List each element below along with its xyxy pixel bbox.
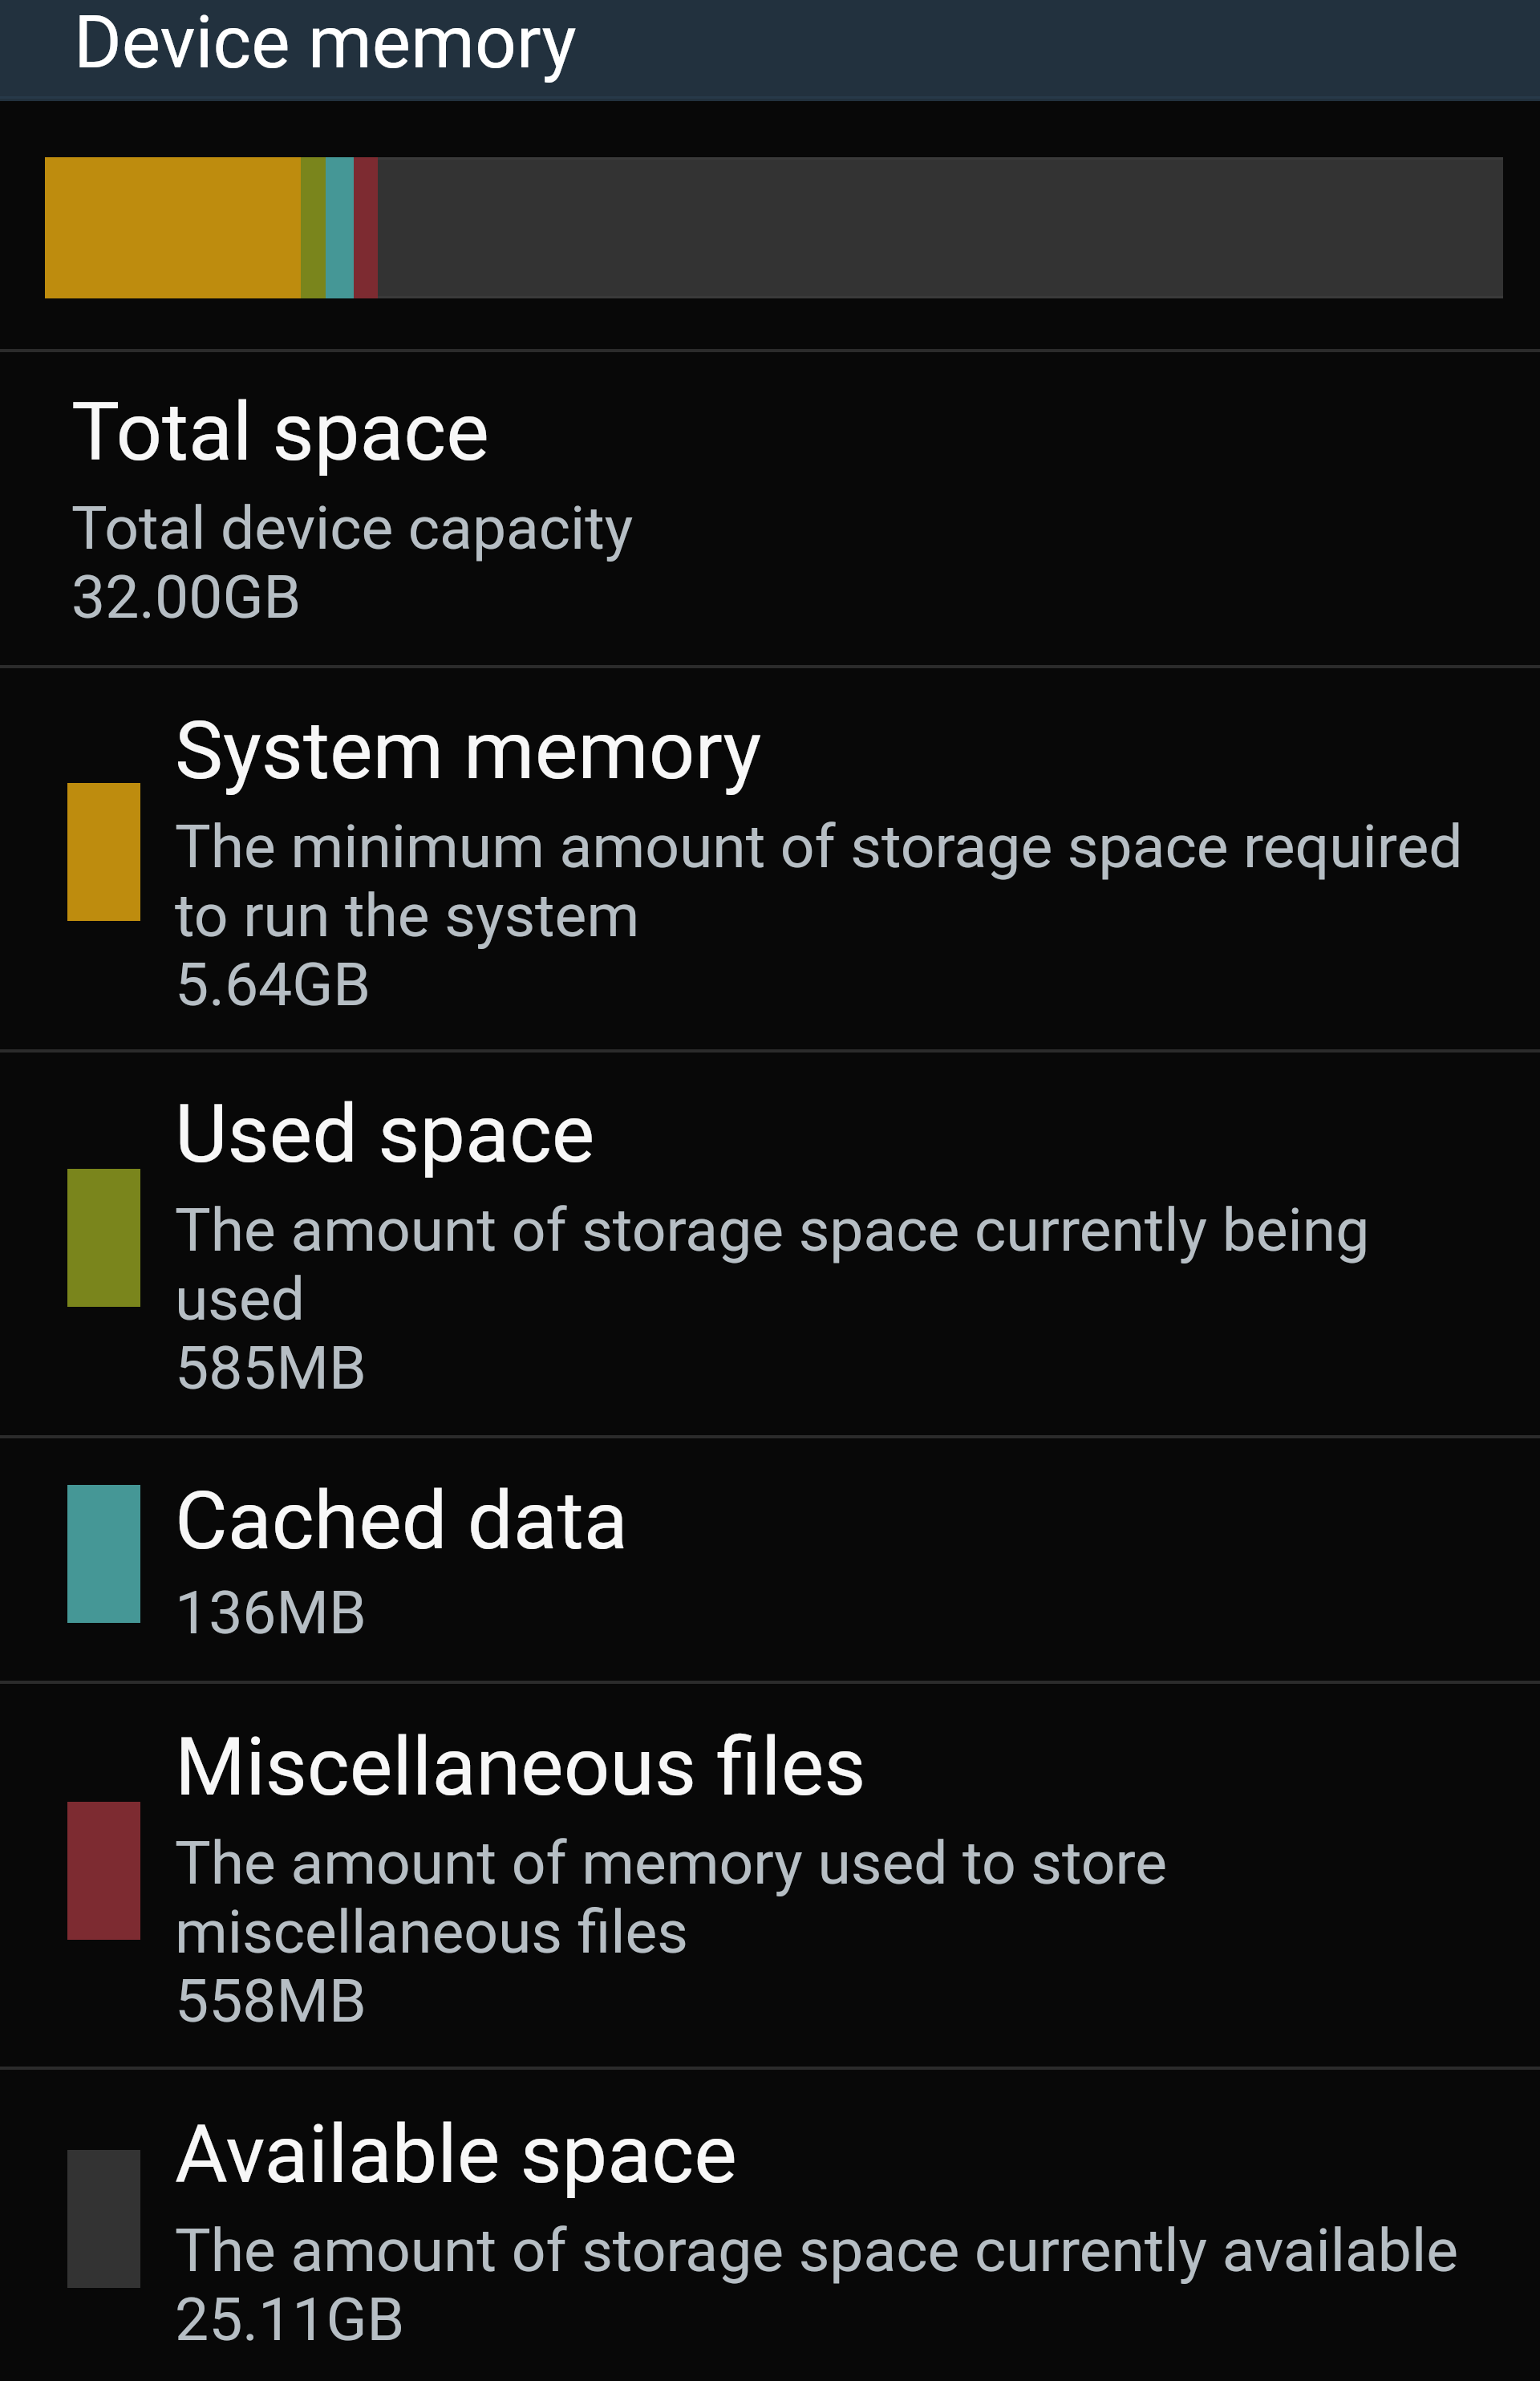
button[interactable]: System memory — [0, 668, 1540, 1049]
staticText: System memory — [175, 703, 762, 797]
staticText: 585MB — [175, 1332, 367, 1403]
staticText: Available space — [175, 2107, 737, 2201]
staticText: miscellaneous files — [175, 1896, 688, 1967]
staticText: Miscellaneous files — [175, 1719, 866, 1814]
button[interactable]: Total space — [0, 352, 1540, 665]
staticText: 558MB — [175, 1965, 367, 2036]
staticText: Used space — [175, 1086, 595, 1181]
button[interactable]: Used space — [0, 1053, 1540, 1435]
staticText: The amount of storage space currently av… — [175, 2215, 1458, 2286]
staticText: 5.64GB — [175, 949, 371, 1020]
staticText: Total device capacity — [71, 493, 634, 563]
staticText: 32.00GB — [71, 562, 302, 632]
staticText: Device memory — [74, 0, 577, 86]
button[interactable]: Device memory — [0, 0, 1540, 101]
staticText: Total space — [71, 384, 489, 479]
staticText: to run the system — [175, 880, 640, 951]
staticText: The amount of storage space currently be… — [175, 1195, 1370, 1265]
staticText: The minimum amount of storage space requ… — [175, 811, 1463, 882]
staticText: Cached data — [175, 1473, 628, 1568]
staticText: 25.11GB — [175, 2284, 405, 2355]
button[interactable]: Cached data — [0, 1438, 1540, 1681]
staticText: The amount of memory used to store — [175, 1827, 1168, 1898]
button[interactable]: Miscellaneous files — [0, 1684, 1540, 2067]
staticText: 136MB — [175, 1577, 367, 1648]
button[interactable]: Available space — [0, 2070, 1540, 2381]
staticText: used — [175, 1264, 306, 1334]
